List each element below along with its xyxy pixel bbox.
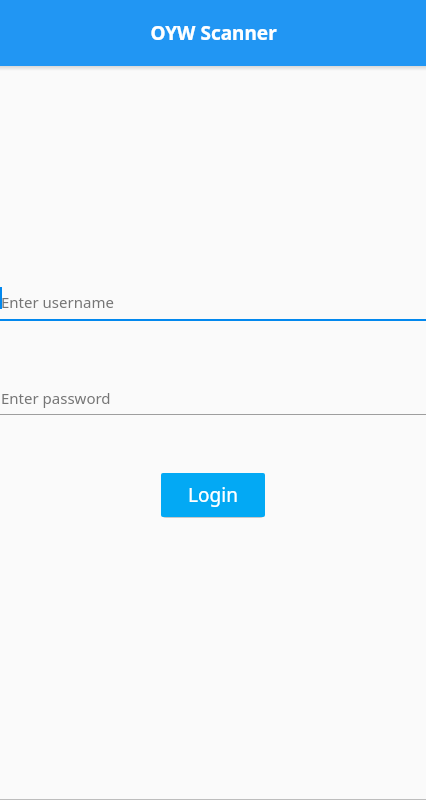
staticText: Login <box>188 482 238 508</box>
staticText: Enter password <box>1 388 111 408</box>
button[interactable]: Enter username <box>0 285 426 319</box>
button[interactable]: Login <box>161 473 265 517</box>
button[interactable]: Enter password <box>0 382 426 414</box>
staticText: Enter username <box>1 292 114 312</box>
staticText: OYW Scanner <box>150 20 277 46</box>
